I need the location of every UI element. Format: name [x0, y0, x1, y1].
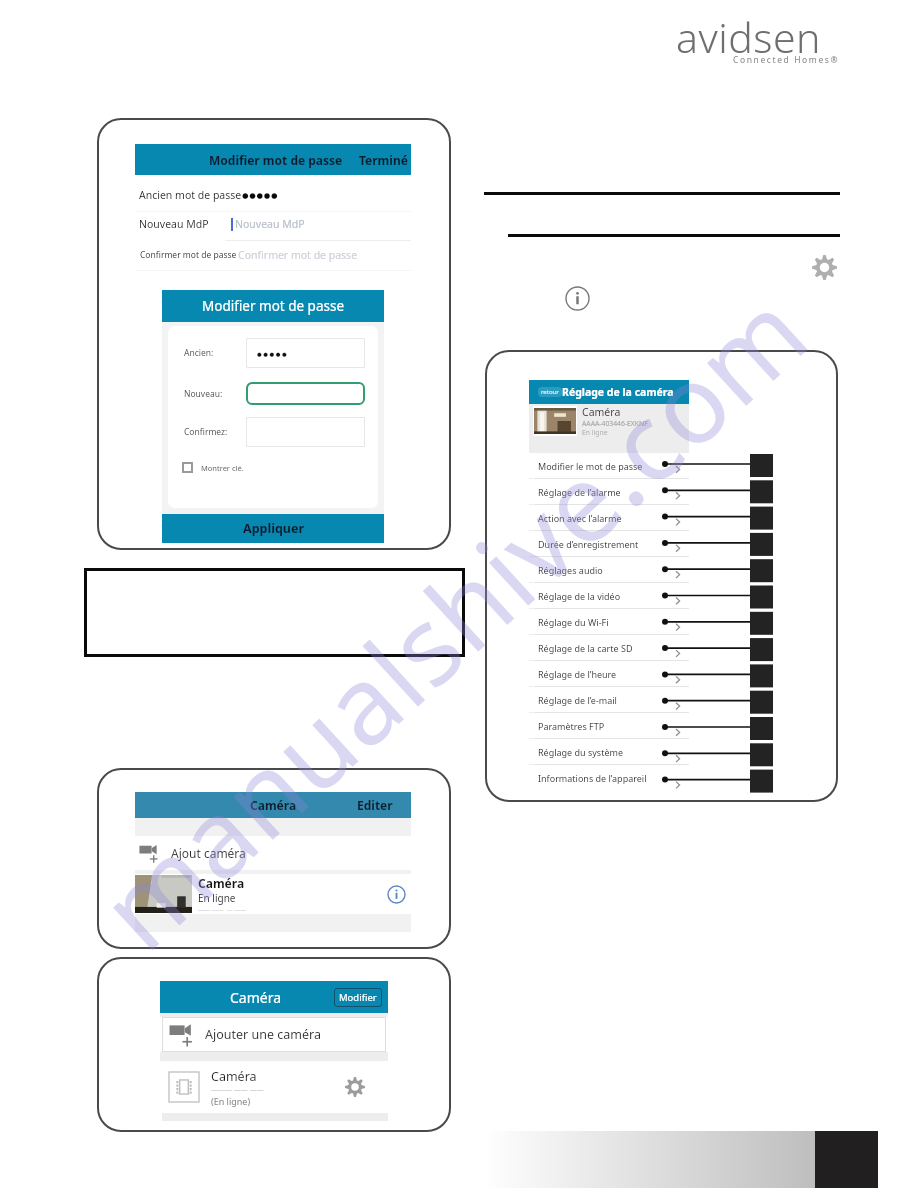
- staticText: ——— —— ——: [211, 1085, 264, 1095]
- button[interactable]: Réglage de la carte SD: [529, 635, 689, 660]
- button[interactable]: Réglage de l’e-mail: [529, 687, 689, 712]
- staticText: Montrer clé.: [201, 463, 244, 473]
- staticText: ● ● ● ● ●: [257, 350, 287, 357]
- staticText: —— —— — ——: [198, 906, 247, 914]
- staticText: Réglage de la vidéo: [538, 590, 621, 602]
- staticText: Ancien:: [184, 347, 246, 359]
- staticText: Ajout caméra: [171, 845, 246, 861]
- button[interactable]: Settings: [811, 254, 837, 280]
- staticText: Caméra: [582, 405, 621, 419]
- button[interactable]: Durée d’enregistrement: [529, 531, 689, 556]
- button[interactable]: Information: [564, 285, 590, 311]
- staticText: Réglage du système: [538, 746, 623, 758]
- button[interactable]: retour: [541, 388, 559, 396]
- button[interactable]: Réglage du système: [529, 739, 689, 764]
- button[interactable]: Caméra: [135, 792, 411, 818]
- button[interactable]: retour: [529, 380, 689, 404]
- button[interactable]: Montrer clé.: [182, 462, 244, 473]
- staticText: manualshive.com: [68, 258, 836, 980]
- staticText: Nouveau:: [184, 388, 246, 400]
- staticText: Caméra: [211, 1068, 257, 1085]
- staticText: Modifier mot de passe: [209, 152, 343, 168]
- staticText: (En ligne): [211, 1095, 251, 1107]
- staticText: Informations de l’appareil: [538, 772, 647, 784]
- button[interactable]: Modifier: [339, 991, 377, 1004]
- staticText: En ligne: [198, 891, 236, 905]
- staticText: Confirmer mot de passe: [238, 248, 358, 262]
- button[interactable]: Camera info: [385, 883, 407, 905]
- staticText: AAAA-403446-EXKNF: [582, 419, 648, 428]
- staticText: avidsen: [676, 9, 821, 65]
- button[interactable]: Caméra: [160, 981, 388, 1013]
- button[interactable]: Ajouter une caméra: [162, 1017, 386, 1052]
- button[interactable]: Caméra: [135, 874, 411, 914]
- staticText: Réglage de la carte SD: [538, 642, 633, 654]
- staticText: Appliquer: [243, 520, 304, 537]
- staticText: Connected Homes®: [733, 54, 840, 66]
- staticText: Réglages audio: [538, 564, 603, 576]
- staticText: Caméra: [198, 875, 245, 891]
- button[interactable]: Réglage de l’alarme: [529, 479, 689, 504]
- button[interactable]: Modifier mot de passe: [135, 144, 411, 175]
- button[interactable]: Caméra: [160, 1061, 388, 1113]
- staticText: Ajouter une caméra: [205, 1026, 321, 1043]
- button[interactable]: Informations de l’appareil: [529, 765, 689, 790]
- staticText: ●●●●●: [242, 191, 279, 200]
- button[interactable]: Réglage de la vidéo: [529, 583, 689, 608]
- staticText: Paramètres FTP: [538, 720, 605, 732]
- staticText: retour: [541, 388, 559, 396]
- staticText: Caméra: [250, 797, 297, 813]
- button[interactable]: Réglage du Wi-Fi: [529, 609, 689, 634]
- button[interactable]: Ajout caméra: [135, 836, 411, 870]
- button[interactable]: Réglages audio: [529, 557, 689, 582]
- button[interactable]: Action avec l’alarme: [529, 505, 689, 530]
- staticText: Réglage du Wi-Fi: [538, 616, 609, 628]
- button[interactable]: Camera settings: [343, 1075, 367, 1099]
- staticText: Modifier mot de passe: [202, 297, 345, 315]
- staticText: Modifier: [339, 991, 377, 1004]
- staticText: Durée d’enregistrement: [538, 538, 639, 550]
- staticText: Nouveau MdP: [139, 217, 209, 231]
- staticText: Editer: [357, 797, 393, 813]
- staticText: Caméra: [230, 988, 282, 1007]
- staticText: En ligne: [582, 428, 608, 437]
- staticText: Modifier le mot de passe: [538, 460, 643, 472]
- staticText: Confirmer mot de passe: [140, 249, 237, 261]
- button[interactable]: Paramètres FTP: [529, 713, 689, 738]
- staticText: Réglage de l’e-mail: [538, 694, 617, 706]
- staticText: Confirmez:: [184, 426, 246, 438]
- staticText: Nouveau MdP: [235, 217, 305, 231]
- button[interactable]: Réglage de l’heure: [529, 661, 689, 686]
- staticText: Ancien mot de passe: [139, 188, 242, 202]
- button[interactable]: Modifier le mot de passe: [529, 453, 689, 478]
- button[interactable]: Appliquer: [162, 514, 384, 543]
- staticText: Réglage de l’alarme: [538, 486, 621, 498]
- staticText: Terminé: [359, 152, 408, 168]
- staticText: Réglage de l’heure: [538, 668, 617, 680]
- staticText: Action avec l’alarme: [538, 512, 622, 524]
- staticText: Réglage de la caméra: [562, 385, 674, 399]
